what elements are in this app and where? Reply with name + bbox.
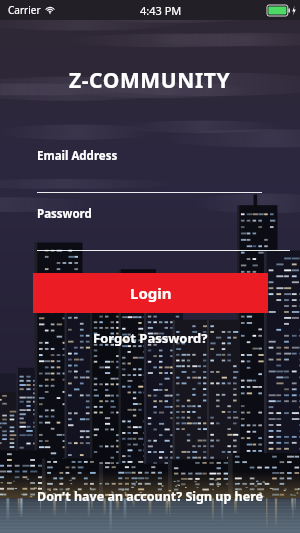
staticText: Forgot Password?: [93, 329, 208, 347]
staticText: Z-COMMUNITY: [69, 66, 231, 95]
button[interactable]: Don't have an account? Sign up here: [0, 488, 300, 505]
staticText: Don't have an account? Sign up here: [37, 488, 263, 505]
button[interactable]: Login: [33, 273, 268, 313]
staticText: Password: [37, 206, 92, 222]
staticText: Email Address: [37, 148, 118, 164]
staticText: 4:43 PM: [140, 3, 182, 18]
staticText: Login: [130, 283, 172, 303]
button[interactable]: Forgot Password?: [83, 326, 218, 350]
staticText: Carrier: [8, 3, 41, 17]
button[interactable]: Password: [0, 206, 300, 251]
button[interactable]: Email Address: [0, 148, 300, 193]
